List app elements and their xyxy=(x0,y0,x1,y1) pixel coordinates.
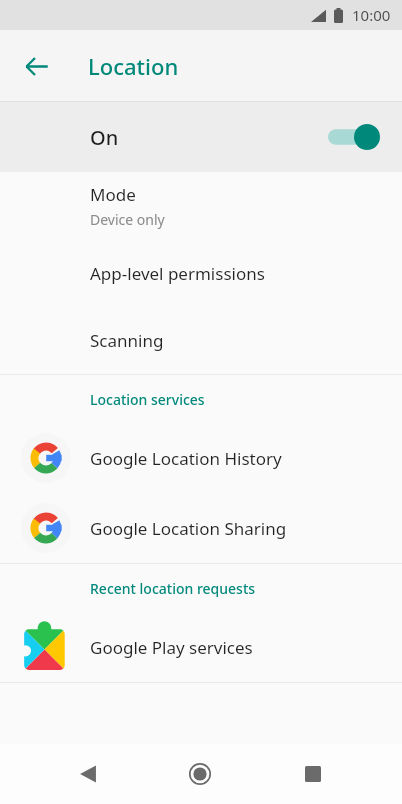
staticText: Location services xyxy=(90,390,205,409)
button[interactable]: Back xyxy=(12,42,60,90)
button[interactable]: On xyxy=(0,102,402,172)
staticText: Scanning xyxy=(90,329,164,352)
button[interactable]: Google Play services xyxy=(0,612,402,682)
staticText: Location xyxy=(88,51,179,81)
button[interactable]: Mode xyxy=(0,172,402,240)
button[interactable]: App-level permissions xyxy=(0,240,402,307)
staticText: Recent location requests xyxy=(90,579,256,598)
button[interactable]: Scanning xyxy=(0,307,402,374)
button[interactable]: Home xyxy=(176,750,224,798)
button[interactable]: Google Location Sharing xyxy=(0,493,402,563)
button[interactable]: Google Location History xyxy=(0,423,402,493)
staticText: Device only xyxy=(90,210,165,229)
staticText: Mode xyxy=(90,183,136,206)
staticText: Google Location History xyxy=(90,447,282,470)
staticText: Google Play services xyxy=(90,636,253,659)
button[interactable]: Recent apps xyxy=(289,750,337,798)
staticText: On xyxy=(90,124,119,151)
staticText: 10:00 xyxy=(352,5,391,25)
button[interactable]: Back xyxy=(64,750,112,798)
staticText: App-level permissions xyxy=(90,262,265,285)
staticText: Google Location Sharing xyxy=(90,517,287,540)
